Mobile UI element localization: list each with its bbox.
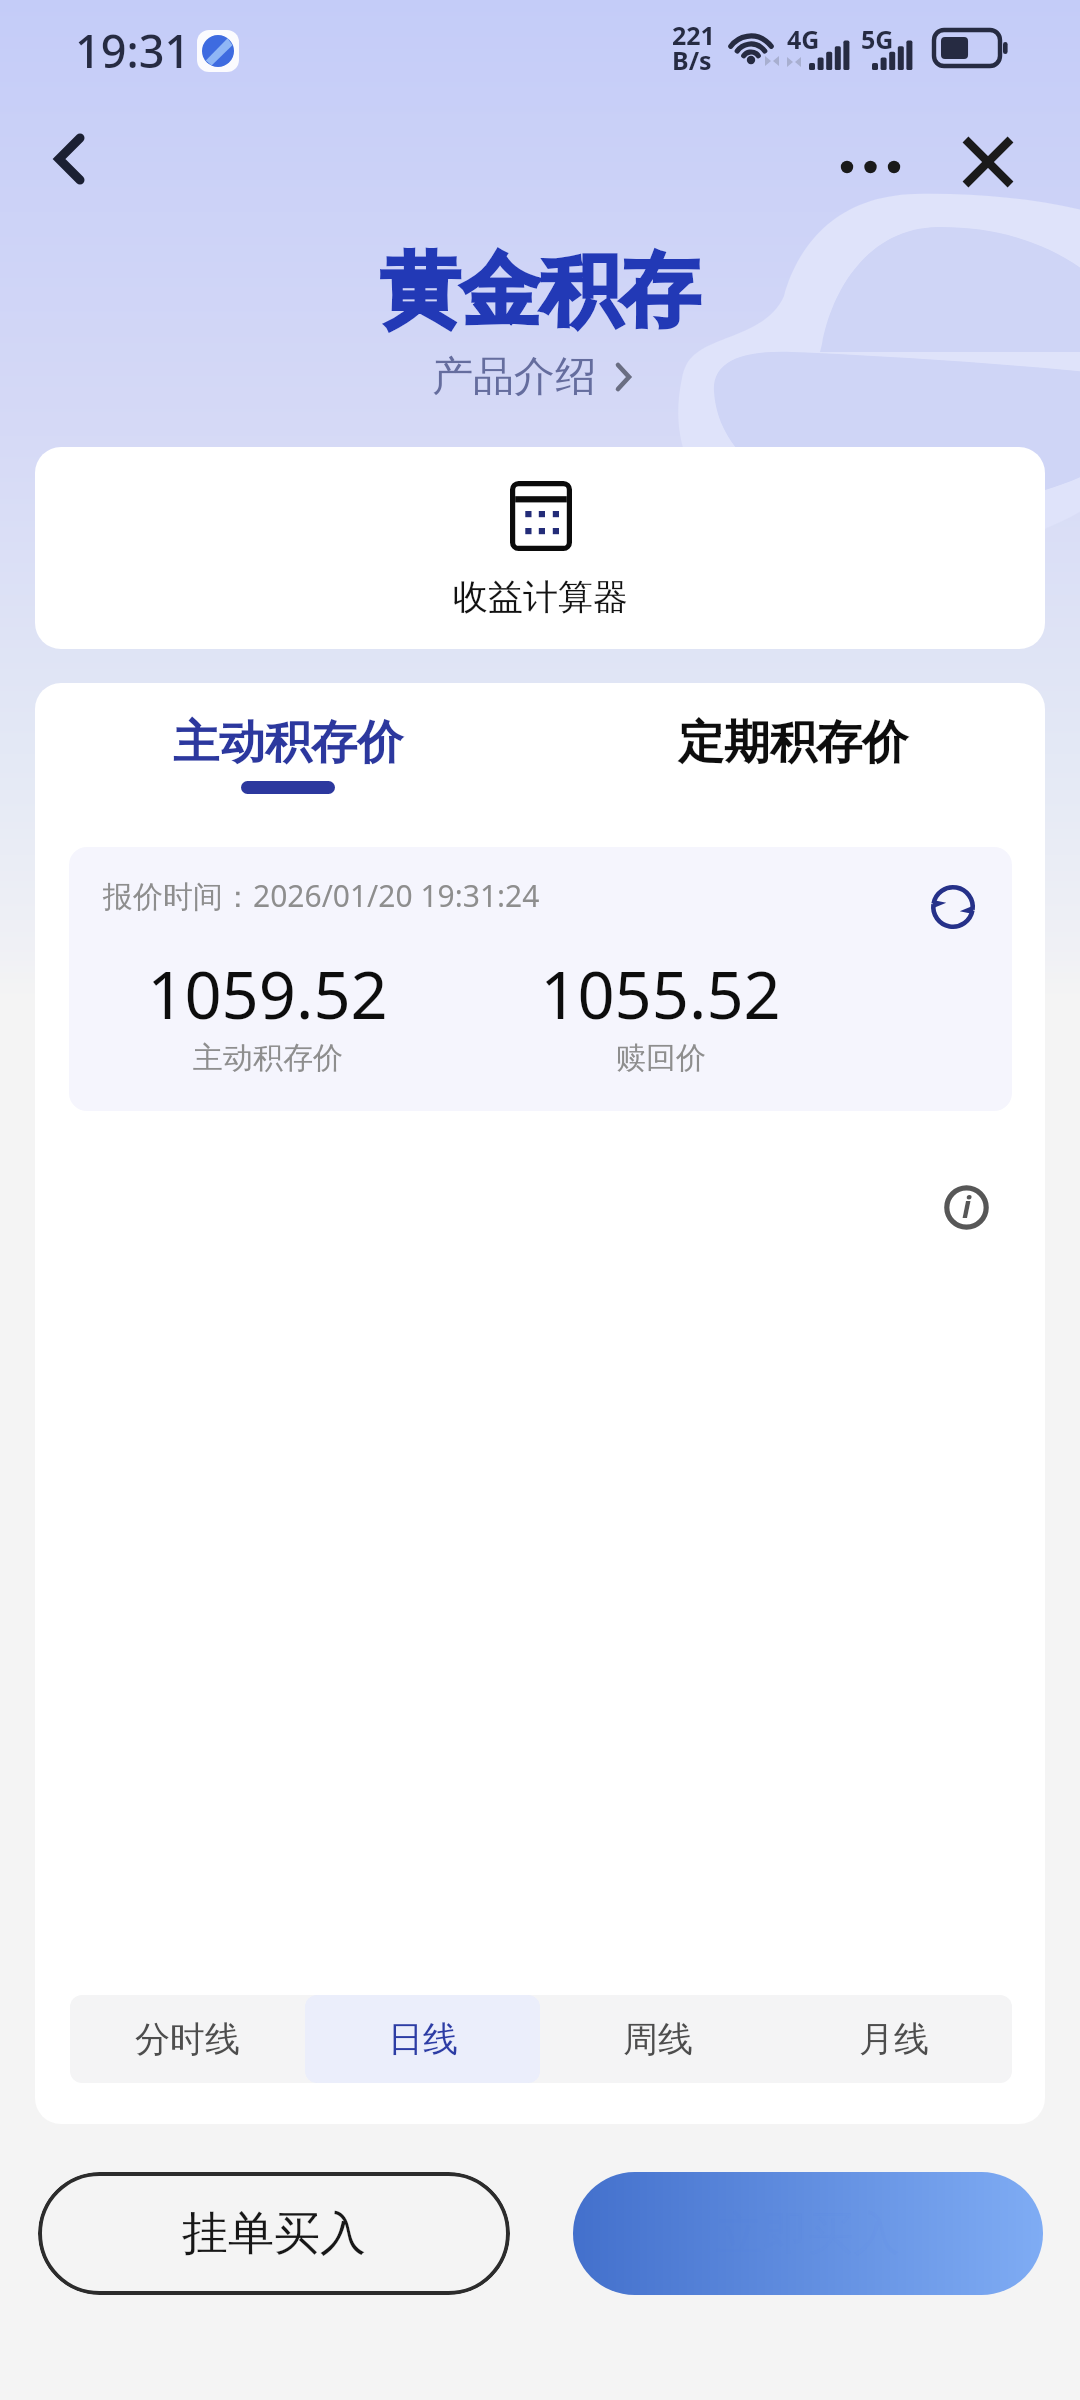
button[interactable]: 日线 [305, 1995, 540, 2083]
staticText: 221 B/s [672, 18, 715, 78]
staticText: 周线 [623, 2017, 693, 2061]
button[interactable]: Info [930, 1171, 1002, 1243]
button[interactable]: 月线 [776, 1995, 1012, 2083]
staticText: 收益计算器 [453, 575, 628, 619]
staticText: 报价时间：2026/01/20 19:31:24 [103, 875, 540, 916]
staticText: 主动积存价 [173, 714, 403, 772]
staticText: 5G [861, 22, 894, 56]
button[interactable]: 主动积存价 [35, 706, 540, 802]
staticText: 4G [787, 22, 820, 56]
staticText: 主动积存价 [193, 1039, 343, 1077]
button[interactable]: 收益计算器 [35, 447, 1045, 649]
button[interactable]: 周线 [540, 1995, 776, 2083]
button[interactable]: Back [26, 115, 114, 203]
button[interactable]: Refresh [922, 876, 984, 938]
staticText: 分时线 [135, 2017, 240, 2061]
staticText: 月线 [859, 2017, 929, 2061]
staticText: 19:31 [75, 20, 191, 81]
staticText: i [962, 1186, 971, 1227]
button[interactable]: 立即买入 [573, 2172, 1043, 2295]
staticText: 定期积存价 [678, 714, 908, 772]
staticText: 赎回价 [616, 1039, 706, 1077]
staticText: 挂单买入 [182, 2205, 366, 2263]
staticText: 黄金积存 [380, 241, 700, 342]
staticText: 日线 [388, 2017, 458, 2061]
staticText: 1059.52 [147, 950, 388, 1039]
button[interactable]: More options [821, 132, 921, 202]
button[interactable]: 分时线 [70, 1995, 305, 2083]
button[interactable]: 挂单买入 [38, 2172, 510, 2295]
staticText: 1055.52 [540, 950, 781, 1039]
button[interactable]: Close [953, 127, 1023, 197]
staticText: 产品介绍 [432, 351, 596, 403]
button[interactable]: 产品介绍 [439, 351, 641, 403]
button[interactable]: 定期积存价 [540, 706, 1045, 802]
staticText: 立即买入 [716, 2205, 900, 2263]
